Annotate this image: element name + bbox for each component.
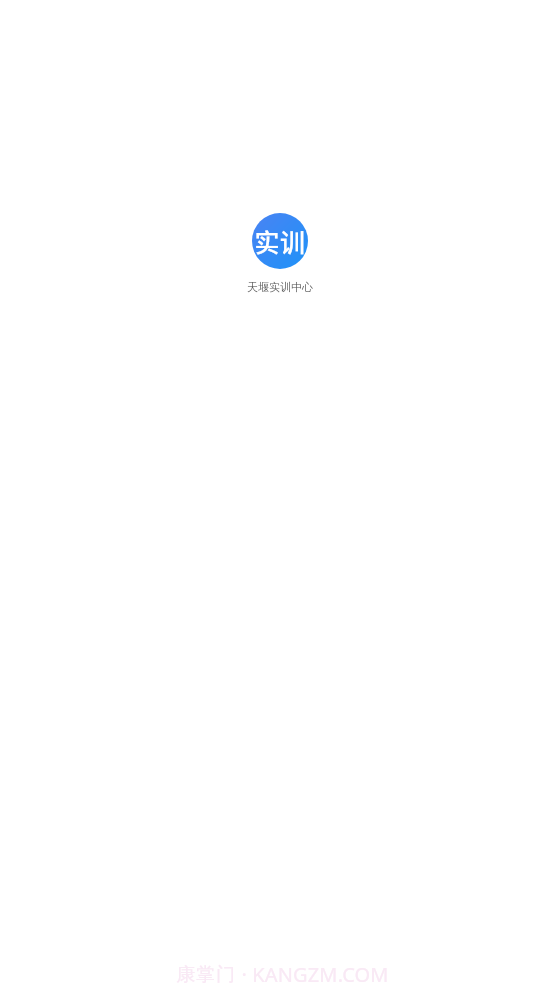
button[interactable]: 天堰实训中心 app logo [223, 205, 337, 302]
staticText: 康掌门 [176, 963, 236, 987]
other: 天堰实训中心 app logo [252, 213, 308, 269]
staticText: 实训 [254, 223, 306, 259]
staticText: · KANGZM.COM [241, 961, 389, 988]
staticText: 天堰实训中心 [247, 280, 313, 294]
